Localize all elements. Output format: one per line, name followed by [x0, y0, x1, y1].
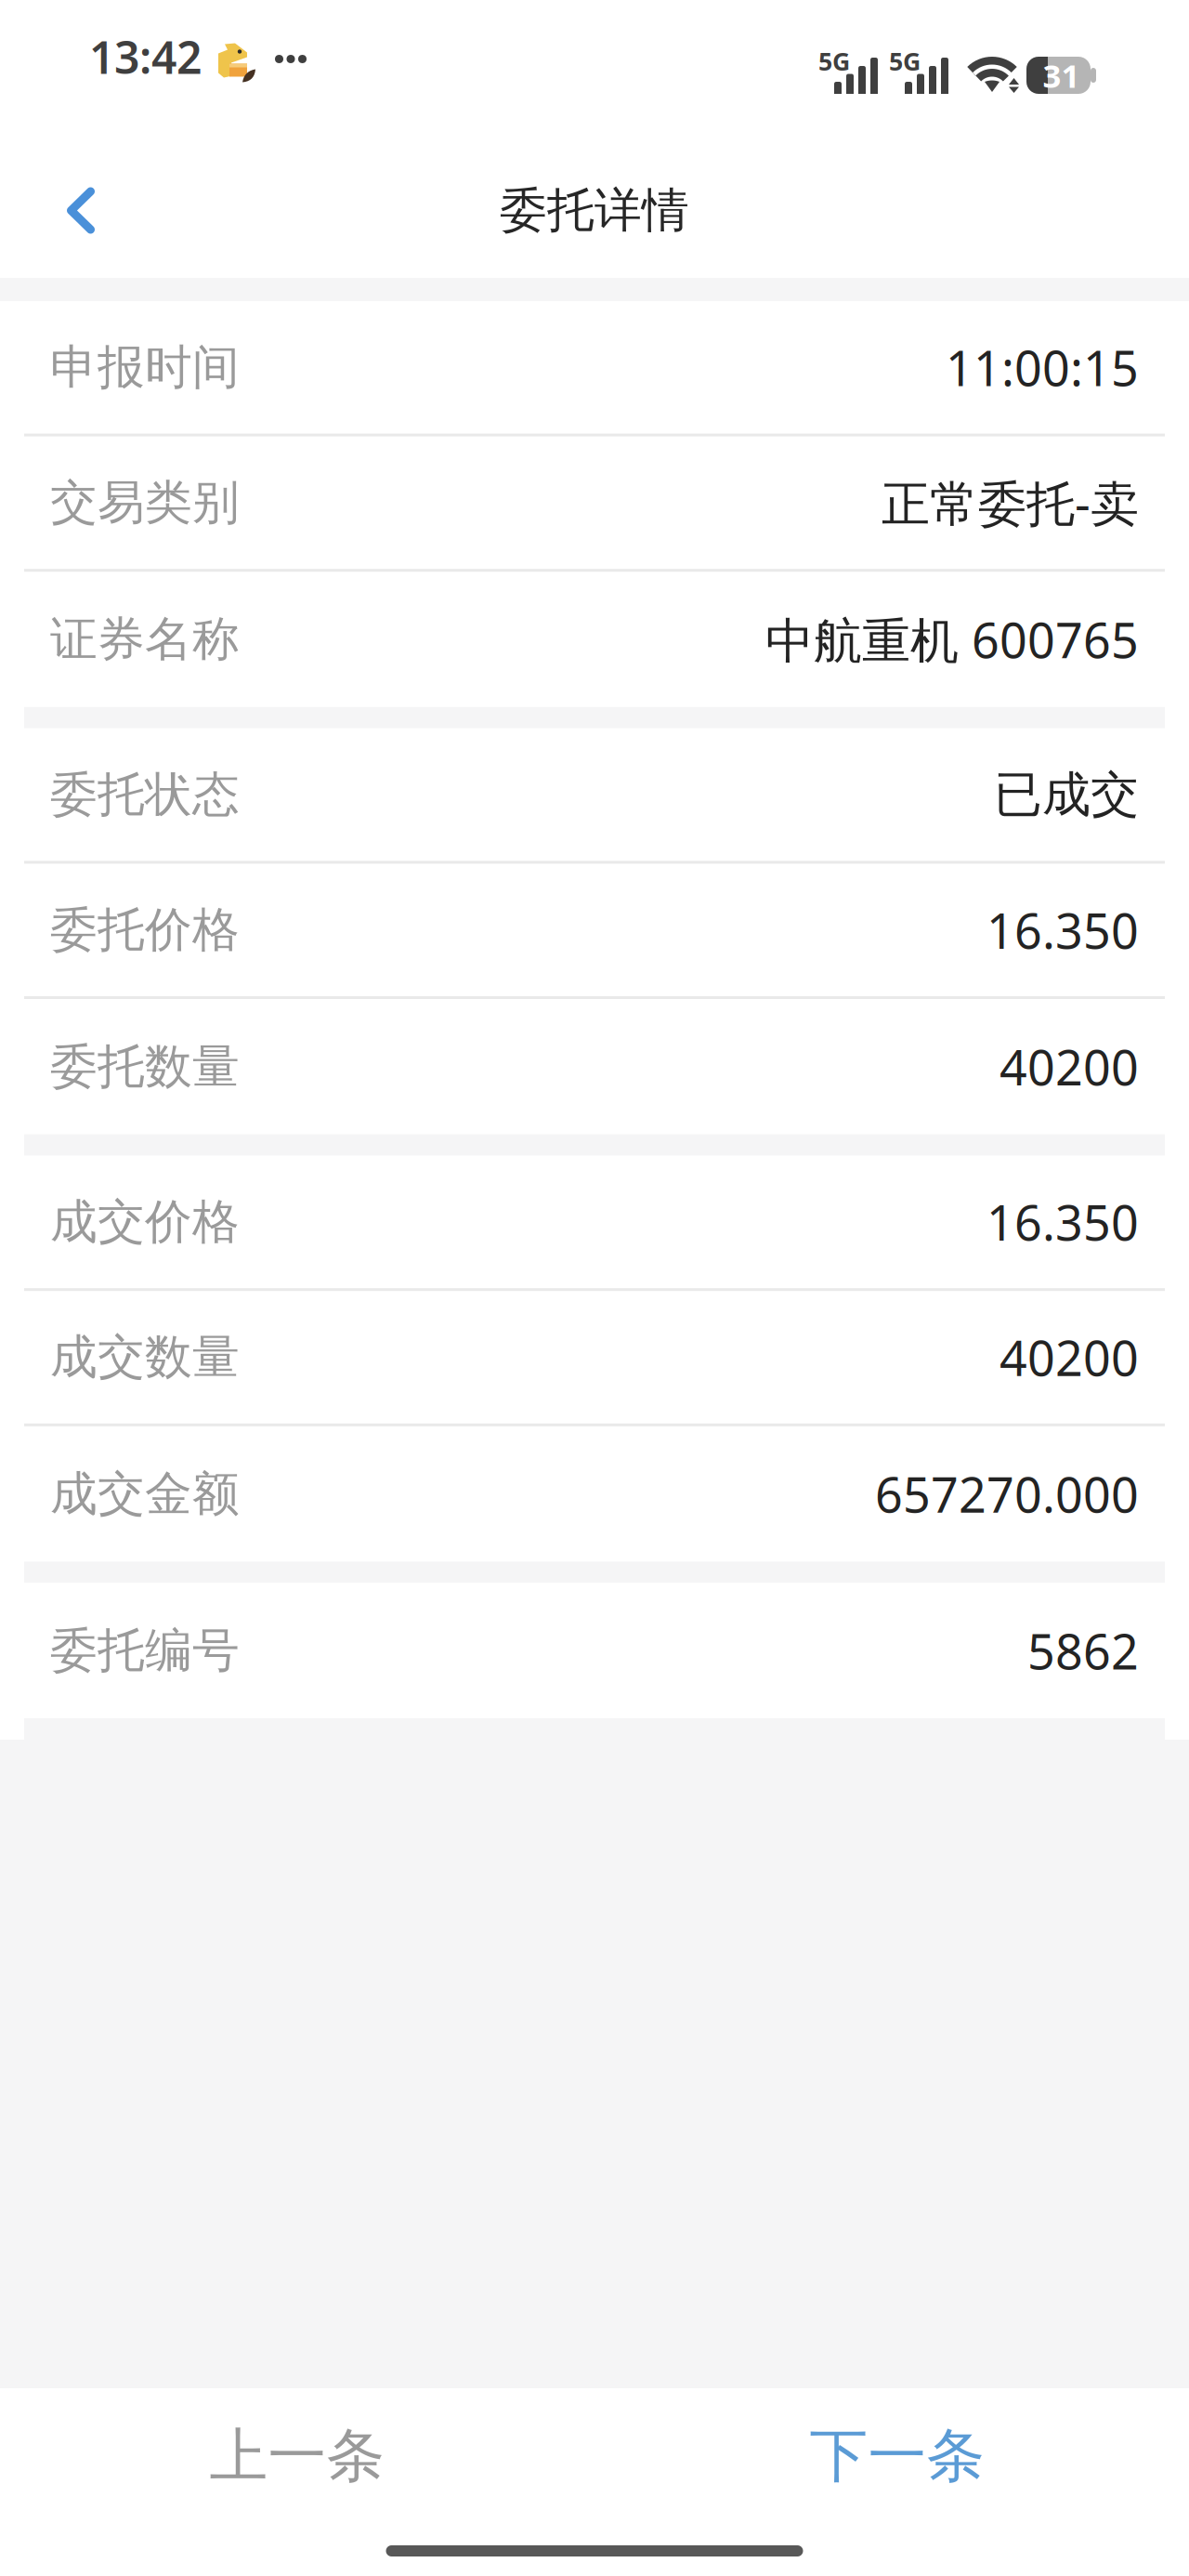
staticText: 5G	[889, 45, 921, 78]
staticText: 已成交	[994, 765, 1139, 824]
staticText: 成交价格	[50, 1193, 240, 1251]
staticText: 上一条	[209, 2420, 385, 2492]
staticText: 下一条	[810, 2420, 985, 2492]
staticText: 成交数量	[50, 1328, 240, 1386]
staticText: 11:00:15	[946, 335, 1139, 400]
staticText: 657270.000	[875, 1462, 1139, 1526]
staticText: 13:42	[89, 27, 202, 86]
staticText: 申报时间	[50, 338, 240, 396]
staticText: 16.350	[986, 898, 1139, 962]
staticText: 40200	[1000, 1325, 1139, 1389]
staticText: 5G	[818, 45, 850, 78]
staticText: 委托数量	[50, 1038, 240, 1096]
staticText: 31	[1043, 54, 1080, 97]
button[interactable]: Back	[0, 134, 139, 255]
staticText: 中航重机 600765	[765, 607, 1139, 672]
staticText: 委托编号	[50, 1622, 240, 1680]
button[interactable]: 上一条	[130, 2393, 464, 2519]
staticText: 证券名称	[50, 610, 240, 668]
staticText: 16.350	[986, 1190, 1139, 1254]
button[interactable]: 下一条	[730, 2393, 1065, 2519]
staticText: 委托状态	[50, 766, 240, 824]
staticText: 40200	[1000, 1035, 1139, 1099]
staticText: 委托详情	[500, 182, 689, 239]
staticText: 交易类别	[50, 474, 240, 532]
staticText: 5862	[1027, 1619, 1139, 1683]
staticText: 成交金额	[50, 1465, 240, 1523]
staticText: 正常委托-卖	[882, 471, 1139, 535]
staticText: 委托价格	[50, 901, 240, 959]
